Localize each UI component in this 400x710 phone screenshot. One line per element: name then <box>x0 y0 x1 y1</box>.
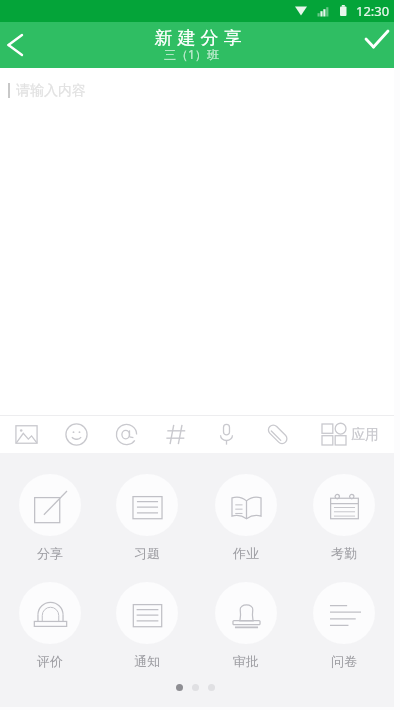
button[interactable]: Voice <box>201 416 251 453</box>
button[interactable]: Back <box>0 22 34 68</box>
staticText: 应用 <box>351 426 379 444</box>
staticText: 12:30 <box>356 2 390 20</box>
staticText: 请输入内容 <box>16 82 86 100</box>
button[interactable]: Emoji <box>51 416 101 453</box>
button[interactable]: 审批 <box>206 582 286 669</box>
button[interactable]: 考勤 <box>304 474 384 561</box>
button[interactable]: Mention <box>101 416 151 453</box>
button[interactable]: Image <box>1 416 51 453</box>
button[interactable]: Topic <box>151 416 201 453</box>
button[interactable]: 通知 <box>107 582 187 669</box>
staticText: 三（1）班 <box>164 46 219 62</box>
button[interactable]: 应用 <box>322 416 379 453</box>
staticText: 通知 <box>134 653 160 669</box>
button[interactable]: 问卷 <box>304 582 384 669</box>
staticText: 问卷 <box>331 653 357 669</box>
button[interactable]: Confirm <box>360 22 400 68</box>
button[interactable]: 评价 <box>10 582 90 669</box>
staticText: 考勤 <box>331 545 357 561</box>
staticText: 审批 <box>233 653 259 669</box>
button[interactable]: Attach <box>252 416 302 453</box>
staticText: 分享 <box>37 545 63 561</box>
staticText: 评价 <box>37 653 63 669</box>
button[interactable]: 分享 <box>10 474 90 561</box>
button[interactable]: 作业 <box>206 474 286 561</box>
staticText: 习题 <box>134 545 160 561</box>
staticText: 作业 <box>233 545 259 561</box>
staticText: 新建分享 <box>152 27 244 50</box>
button[interactable]: 习题 <box>107 474 187 561</box>
